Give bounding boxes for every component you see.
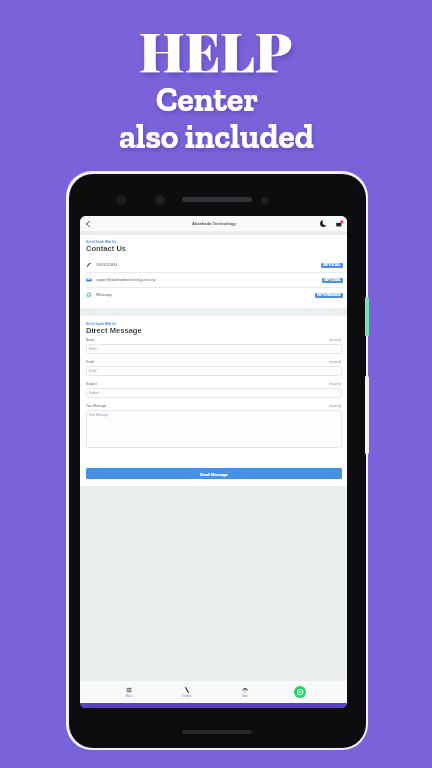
button[interactable]: TAP TO MESSAGE [315, 293, 343, 298]
staticText: Name [86, 338, 95, 342]
button[interactable]: Contact [178, 685, 195, 699]
staticText: Email [86, 360, 94, 364]
staticText: Contact [182, 695, 191, 698]
button[interactable]: Dark mode [318, 218, 329, 229]
button[interactable]: Your Message [86, 410, 342, 448]
button[interactable]: TAP TO CALL [321, 263, 343, 268]
staticText: Subject [86, 382, 97, 386]
staticText: Data [242, 695, 248, 698]
staticText: (required) [329, 360, 342, 363]
button[interactable]: support@alwahadatechnology.com.ng [86, 273, 343, 287]
button[interactable]: Subject [86, 388, 342, 398]
staticText: Email [89, 369, 97, 372]
button[interactable]: Menu [121, 685, 137, 699]
staticText: (required) [329, 404, 342, 407]
staticText: Center [156, 79, 258, 119]
staticText: Menu [126, 695, 133, 698]
staticText: Get In Touch With Us [86, 240, 116, 243]
button[interactable]: Whatsapp [86, 288, 343, 302]
button[interactable]: Send Message [86, 468, 342, 479]
staticText: (required) [329, 382, 342, 385]
staticText: Alwahada Technology [192, 221, 236, 226]
button[interactable]: Back [82, 218, 94, 230]
button[interactable]: 08026010444 [86, 258, 343, 272]
button[interactable]: TAP TO MAIL [322, 278, 343, 283]
staticText: Get In Touch With Us [86, 322, 116, 325]
staticText: HELP [139, 12, 293, 85]
staticText: Direct Message [86, 326, 142, 334]
button[interactable]: Name [86, 344, 342, 354]
staticText: also included [119, 116, 314, 156]
staticText: TAP TO MAIL [324, 279, 341, 282]
staticText: Contact Us [86, 244, 127, 252]
staticText: TAP TO CALL [323, 264, 341, 267]
staticText: TAP TO MESSAGE [317, 294, 341, 297]
staticText: Name [89, 347, 98, 350]
button[interactable]: Cart [334, 218, 345, 229]
button[interactable]: WhatsApp [294, 686, 306, 698]
staticText: 08026010444 [96, 263, 118, 267]
staticText: Send Message [200, 472, 228, 476]
staticText: Subject [89, 391, 100, 394]
staticText: Your Message [89, 413, 109, 416]
button[interactable]: Email [86, 366, 342, 376]
button[interactable]: Data [237, 685, 253, 699]
staticText: Your Message [86, 404, 107, 408]
staticText: support@alwahadatechnology.com.ng [96, 278, 156, 282]
staticText: Whatsapp [96, 293, 112, 297]
staticText: (required) [329, 338, 342, 341]
